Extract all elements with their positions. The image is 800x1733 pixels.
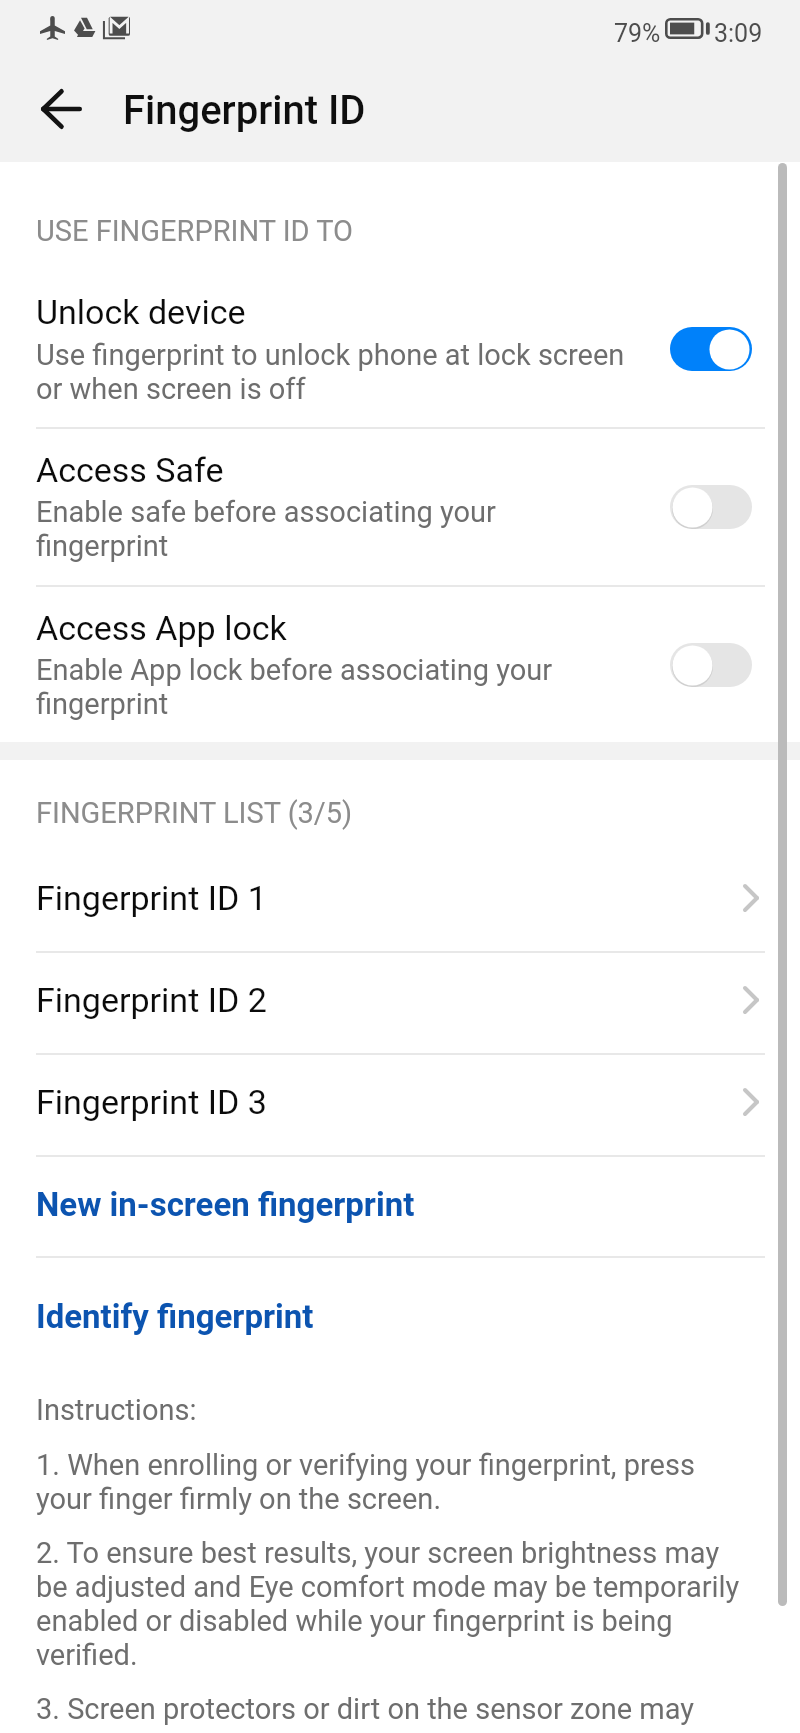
staticText: 1. When enrolling or verifying your fing… xyxy=(36,1448,695,1516)
staticText: 79% xyxy=(614,19,661,48)
staticText: Fingerprint ID 1 xyxy=(36,878,743,918)
button[interactable]: Fingerprint ID 1 xyxy=(0,878,800,951)
staticText: Identify fingerprint xyxy=(36,1297,314,1336)
button[interactable]: Back xyxy=(17,65,105,153)
staticText: Fingerprint ID 2 xyxy=(36,980,743,1020)
button[interactable]: Fingerprint ID 3 xyxy=(0,1055,800,1155)
staticText: 3:09 xyxy=(714,19,763,48)
staticText: Instructions: xyxy=(36,1393,197,1427)
staticText: Access App lock xyxy=(36,608,287,648)
button[interactable]: New in-screen fingerprint xyxy=(0,1157,800,1256)
staticText: Access Safe xyxy=(36,450,224,490)
staticText: USE FINGERPRINT ID TO xyxy=(36,214,354,248)
staticText: 2. To ensure best results, your screen b… xyxy=(36,1536,740,1672)
button[interactable]: Switch off xyxy=(670,643,752,687)
button[interactable]: Switch off xyxy=(670,485,752,529)
staticText: Use fingerprint to unlock phone at lock … xyxy=(36,338,625,406)
staticText: Enable App lock before associating your … xyxy=(36,653,553,721)
button[interactable]: Access Safe xyxy=(0,450,800,563)
staticText: FINGERPRINT LIST (3/5) xyxy=(36,796,353,830)
staticText: 3. Screen protectors or dirt on the sens… xyxy=(36,1692,695,1726)
staticText: Fingerprint ID xyxy=(123,87,366,134)
button[interactable]: Unlock device xyxy=(0,292,800,406)
button[interactable]: Switch on xyxy=(670,327,752,371)
staticText: New in-screen fingerprint xyxy=(36,1185,415,1224)
staticText: Unlock device xyxy=(36,292,246,332)
staticText: Enable safe before associating your fing… xyxy=(36,495,496,563)
button[interactable]: Access App lock xyxy=(0,608,800,721)
staticText: Fingerprint ID 3 xyxy=(36,1082,743,1122)
button[interactable]: Fingerprint ID 2 xyxy=(0,953,800,1053)
button[interactable]: Identify fingerprint xyxy=(0,1258,800,1336)
